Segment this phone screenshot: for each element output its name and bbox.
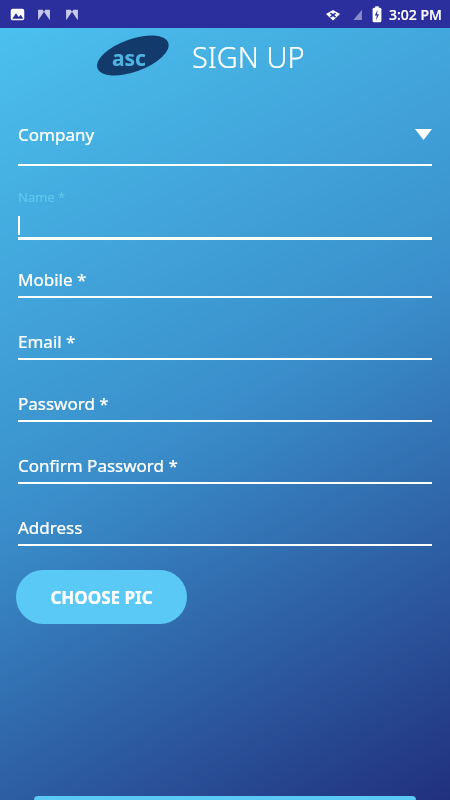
staticText: Mobile * bbox=[18, 268, 87, 291]
staticText: Confirm Password * bbox=[18, 454, 178, 477]
staticText: Name * bbox=[18, 188, 66, 206]
staticText: SIGN UP bbox=[192, 37, 305, 76]
staticText: 3:02 PM bbox=[389, 5, 442, 24]
button[interactable]: Confirm Password * bbox=[18, 444, 432, 484]
button[interactable]: Name * bbox=[18, 188, 432, 240]
button[interactable]: Company bbox=[18, 114, 432, 166]
button[interactable]: Mobile * bbox=[18, 258, 432, 298]
staticText: Company bbox=[18, 123, 95, 146]
button[interactable]: Email * bbox=[18, 320, 432, 360]
staticText: Email * bbox=[18, 330, 76, 353]
button[interactable]: Password * bbox=[18, 382, 432, 422]
button[interactable] bbox=[34, 796, 416, 800]
staticText: Address bbox=[18, 516, 83, 539]
staticText: CHOOSE PIC bbox=[50, 586, 153, 609]
staticText: asc bbox=[112, 44, 146, 73]
button[interactable]: Address bbox=[18, 506, 432, 546]
staticText: Password * bbox=[18, 392, 109, 415]
button[interactable]: CHOOSE PIC bbox=[16, 570, 187, 624]
